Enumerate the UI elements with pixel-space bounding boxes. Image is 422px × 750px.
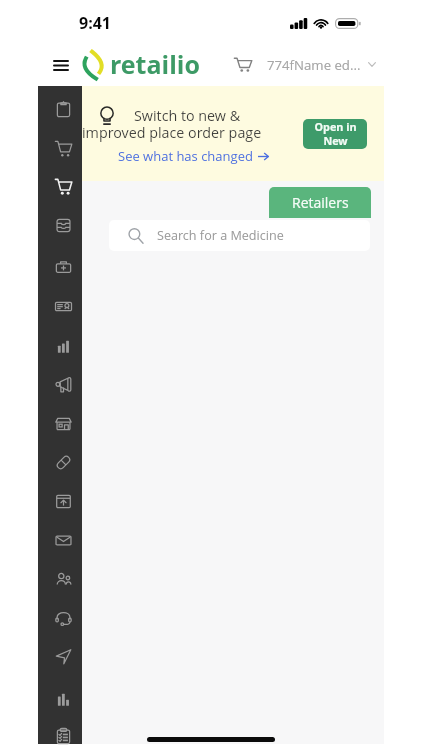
staticText: Retailers: [292, 193, 349, 212]
button[interactable]: Promotions: [38, 365, 82, 404]
staticText: Open in New: [314, 119, 357, 149]
staticText: See what has changed: [118, 147, 253, 165]
button[interactable]: Products: [38, 443, 82, 482]
button[interactable]: Analytics: [38, 679, 82, 718]
button[interactable]: Deliveries: [38, 637, 82, 676]
button[interactable]: See what has changed: [118, 147, 269, 165]
button[interactable]: 774fName ed...: [231, 53, 379, 77]
button[interactable]: Support: [38, 598, 82, 637]
button[interactable]: Purchase cart: [38, 167, 82, 206]
button[interactable]: Tasks: [38, 717, 82, 750]
staticText: improved place order page: [82, 123, 262, 142]
button[interactable]: Open menu: [48, 53, 74, 77]
button[interactable]: Orders: [38, 90, 82, 129]
button[interactable]: Retailers: [269, 187, 371, 218]
button[interactable]: Search for a Medicine: [109, 220, 370, 251]
button[interactable]: Shopping cart: [38, 129, 82, 168]
button[interactable]: Medicines: [38, 248, 82, 287]
staticText: Switch to new &: [134, 106, 241, 125]
button[interactable]: Reports: [38, 326, 82, 365]
staticText: retailio: [110, 47, 200, 81]
button[interactable]: Stores: [38, 404, 82, 443]
button[interactable]: Open in New: [303, 119, 367, 149]
button[interactable]: Messages: [38, 521, 82, 560]
button[interactable]: Uploads: [38, 482, 82, 521]
staticText: 9:41: [79, 12, 111, 34]
button[interactable]: Customers: [38, 560, 82, 599]
button[interactable]: Licences: [38, 287, 82, 326]
button[interactable]: Inventory: [38, 206, 82, 245]
staticText: Search for a Medicine: [157, 227, 284, 244]
staticText: 774fName ed...: [267, 56, 361, 74]
